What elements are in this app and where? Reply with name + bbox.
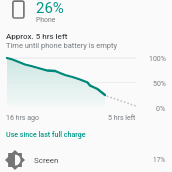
staticText: 5 hrs left — [108, 114, 136, 122]
button[interactable]: Use since last full charge — [6, 130, 86, 138]
staticText: 16 hrs ago — [6, 114, 39, 122]
staticText: Approx. 5 hrs left — [6, 32, 68, 41]
staticText: 26% — [36, 0, 64, 17]
staticText: 100% — [149, 55, 166, 63]
staticText: Use since last full charge — [6, 130, 86, 138]
staticText: 50% — [153, 80, 166, 88]
staticText: Phone — [36, 16, 56, 24]
staticText: Screen — [34, 156, 59, 165]
button[interactable]: Screen — [0, 146, 172, 172]
other: Phone — [11, 0, 26, 20]
staticText: 17% — [153, 156, 166, 164]
staticText: 0% — [156, 105, 166, 113]
staticText: Time until phone battery is empty — [6, 41, 118, 50]
